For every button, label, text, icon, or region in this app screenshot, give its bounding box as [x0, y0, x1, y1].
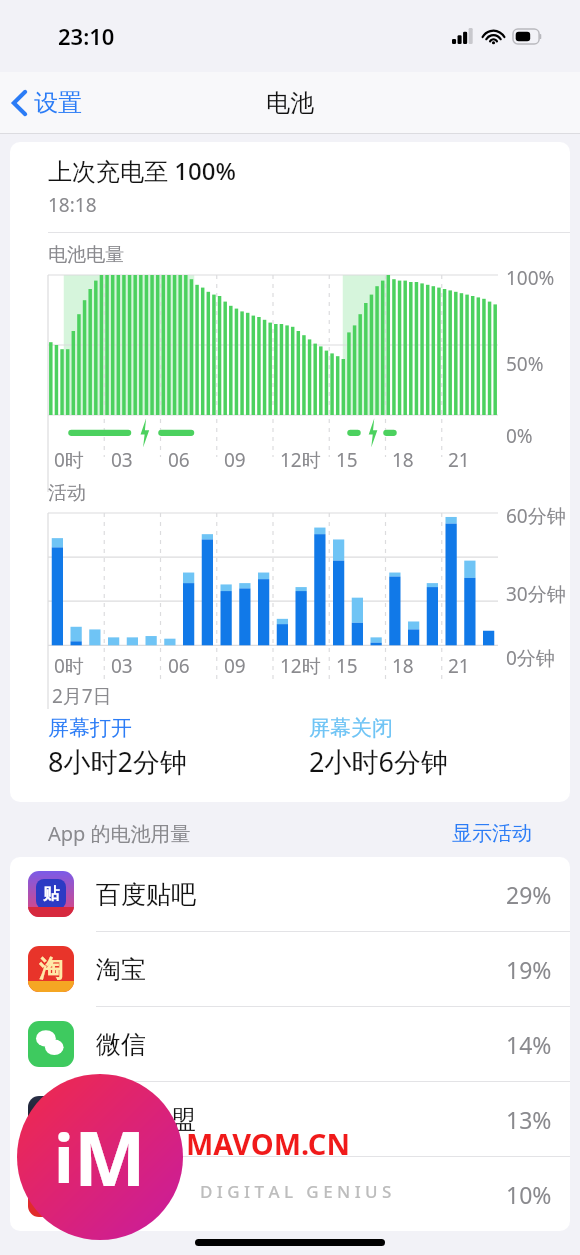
staticText: 14% [506, 1029, 552, 1060]
staticText: 0时 [54, 653, 84, 679]
staticText: 英雄联盟 [96, 1104, 196, 1135]
staticText: 京 [40, 1180, 62, 1208]
staticText: 23:10 [58, 21, 115, 51]
staticText: 淘 [39, 954, 63, 984]
button[interactable]: 微信 [10, 1007, 570, 1081]
staticText: 电池 [266, 88, 314, 118]
staticText: 18:18 [48, 192, 97, 218]
staticText: 19% [506, 954, 552, 985]
staticText: 06 [168, 653, 190, 679]
staticText: i [54, 1112, 74, 1202]
staticText: 18 [392, 653, 414, 679]
staticText: MAVOM.CN [186, 1124, 350, 1163]
staticText: 03 [111, 447, 133, 473]
staticText: 100% [506, 265, 555, 291]
staticText: 12时 [280, 447, 321, 473]
button[interactable]: 贴 [10, 857, 570, 931]
staticText: 15 [336, 653, 358, 679]
staticText: 0分钟 [506, 645, 555, 671]
staticText: 06 [168, 447, 190, 473]
staticText: 13% [506, 1104, 552, 1135]
staticText: 18 [392, 447, 414, 473]
staticText: 百度贴吧 [96, 879, 196, 910]
staticText: 微信 [96, 1029, 146, 1060]
staticText: 15 [336, 447, 358, 473]
staticText: 21 [448, 447, 470, 473]
staticText: 上次充电至 100% [48, 154, 236, 187]
button[interactable]: 淘 [10, 932, 570, 1006]
staticText: 0% [506, 423, 533, 449]
staticText: 2小时6分钟 [309, 743, 448, 780]
staticText: 60分钟 [506, 503, 566, 529]
staticText: 12时 [280, 653, 321, 679]
staticText: D I G I T A L G E N I U S [200, 1180, 392, 1203]
staticText: 2月7日 [52, 683, 112, 709]
staticText: 屏幕打开 [48, 715, 132, 741]
button[interactable]: 设置 [0, 82, 94, 124]
staticText: 21 [448, 653, 470, 679]
staticText: 英 [40, 1105, 62, 1133]
staticText: 京东 [96, 1179, 146, 1210]
staticText: 29% [506, 879, 552, 910]
staticText: 贴 [43, 884, 59, 904]
staticText: 0时 [54, 447, 84, 473]
staticText: 50% [506, 351, 544, 377]
button[interactable]: 显示活动 [452, 821, 532, 846]
staticText: 显示活动 [452, 821, 532, 846]
staticText: 淘宝 [96, 954, 146, 985]
staticText: App 的电池用量 [48, 820, 191, 847]
staticText: 屏幕关闭 [309, 715, 393, 741]
button[interactable]: 京 [10, 1157, 570, 1231]
staticText: 活动 [48, 481, 86, 505]
staticText: 03 [111, 653, 133, 679]
staticText: 10% [506, 1179, 552, 1210]
staticText: 09 [224, 653, 246, 679]
staticText: 30分钟 [506, 581, 566, 607]
staticText: 电池电量 [48, 243, 124, 267]
staticText: 设置 [34, 88, 82, 118]
staticText: M [74, 1105, 146, 1209]
button[interactable]: 英 [10, 1082, 570, 1156]
staticText: 8小时2分钟 [48, 743, 187, 780]
staticText: 09 [224, 447, 246, 473]
